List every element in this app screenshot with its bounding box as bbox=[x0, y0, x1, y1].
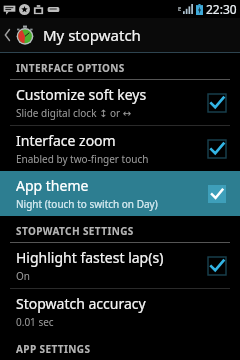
staticText: Highlight fastest lap(s) bbox=[16, 248, 164, 267]
staticText: APP SETTINGS bbox=[16, 342, 91, 356]
staticText: On bbox=[16, 269, 30, 283]
button[interactable]: Highlight fastest lap(s) bbox=[0, 243, 240, 288]
staticText: My stopwatch bbox=[43, 25, 141, 45]
button[interactable]: Interface zoom bbox=[0, 126, 240, 171]
staticText: Stopwatch accuracy bbox=[16, 294, 146, 313]
button[interactable]: App theme bbox=[0, 171, 240, 216]
button[interactable]: Navigate up, My stopwatch bbox=[0, 18, 240, 52]
staticText: STOPWATCH SETTINGS bbox=[16, 224, 134, 238]
staticText: 22:30 bbox=[206, 1, 237, 17]
button[interactable]: Customize soft keys bbox=[0, 80, 240, 125]
staticText: E bbox=[178, 5, 182, 13]
staticText: App theme bbox=[16, 176, 89, 195]
staticText: INTERFACE OPTIONS bbox=[16, 61, 125, 75]
staticText: Slide digital clock ↕ or ↔ bbox=[16, 106, 132, 120]
button[interactable]: Stopwatch accuracy bbox=[0, 289, 240, 334]
staticText: Interface zoom bbox=[16, 131, 116, 150]
staticText: Customize soft keys bbox=[16, 85, 147, 104]
staticText: 0.01 sec bbox=[16, 315, 54, 329]
staticText: Night (touch to switch on Day) bbox=[16, 197, 158, 211]
staticText: Enabled by two-finger touch bbox=[16, 152, 149, 166]
